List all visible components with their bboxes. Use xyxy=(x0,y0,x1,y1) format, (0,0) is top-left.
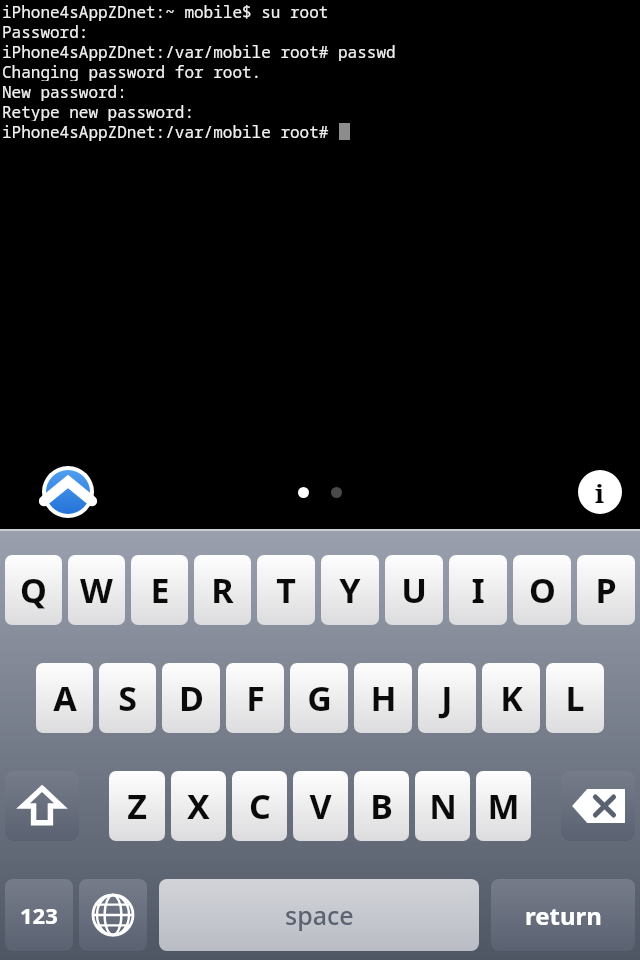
button[interactable]: Shift xyxy=(5,771,79,841)
button[interactable]: E xyxy=(131,555,188,625)
button[interactable]: W xyxy=(68,555,125,625)
staticText: Changing password for root. xyxy=(2,61,262,81)
button[interactable]: Q xyxy=(5,555,62,625)
staticText: Retype new password: xyxy=(2,101,195,121)
button[interactable]: Backspace xyxy=(561,771,635,841)
staticText: E xyxy=(150,567,170,613)
staticText: F xyxy=(246,675,265,721)
staticText: V xyxy=(309,783,332,829)
staticText: H xyxy=(370,675,397,721)
button[interactable]: N xyxy=(415,771,470,841)
button[interactable]: 123 xyxy=(5,879,73,951)
button[interactable]: X xyxy=(171,771,226,841)
staticText: 123 xyxy=(20,900,58,930)
staticText: C xyxy=(249,783,271,829)
button[interactable]: I xyxy=(449,555,507,625)
staticText: I xyxy=(471,567,485,613)
staticText: L xyxy=(565,675,585,721)
staticText: J xyxy=(441,675,453,721)
button[interactable]: Y xyxy=(321,555,379,625)
staticText: New password: xyxy=(2,81,127,101)
staticText: O xyxy=(529,567,556,613)
staticText: T xyxy=(276,567,296,613)
staticText: X xyxy=(187,783,210,829)
button[interactable]: Info xyxy=(578,470,622,514)
staticText: N xyxy=(429,783,457,829)
button[interactable]: D xyxy=(162,663,220,733)
button[interactable]: space xyxy=(159,879,479,951)
button[interactable]: V xyxy=(293,771,348,841)
button[interactable]: P xyxy=(577,555,635,625)
staticText: return xyxy=(525,899,602,932)
button[interactable]: return xyxy=(491,879,635,951)
button[interactable]: Scroll up xyxy=(42,466,94,518)
staticText: M xyxy=(487,783,520,829)
button[interactable]: C xyxy=(232,771,287,841)
button[interactable]: Change keyboard xyxy=(79,879,147,951)
staticText: Password: xyxy=(2,21,89,41)
staticText: D xyxy=(179,675,204,721)
staticText: A xyxy=(53,675,77,721)
button[interactable]: U xyxy=(385,555,443,625)
button[interactable]: J xyxy=(418,663,476,733)
staticText: U xyxy=(401,567,427,613)
button[interactable]: M xyxy=(476,771,531,841)
staticText: P xyxy=(595,567,617,613)
staticText: S xyxy=(118,675,137,721)
staticText: iPhone4sAppZDnet:/var/mobile root# passw… xyxy=(2,41,396,61)
staticText: R xyxy=(211,567,234,613)
staticText: B xyxy=(370,783,393,829)
button[interactable]: R xyxy=(194,555,251,625)
staticText: K xyxy=(500,675,523,721)
staticText: W xyxy=(80,567,113,613)
button[interactable]: A xyxy=(36,663,93,733)
staticText: Z xyxy=(127,783,147,829)
staticText: iPhone4sAppZDnet:~ mobile$ su root xyxy=(2,1,329,21)
staticText: Y xyxy=(339,567,361,613)
staticText: G xyxy=(307,675,332,721)
button[interactable]: H xyxy=(354,663,412,733)
button[interactable]: T xyxy=(257,555,315,625)
staticText: i xyxy=(595,475,605,510)
staticText: iPhone4sAppZDnet:/var/mobile root# xyxy=(2,121,339,141)
button[interactable]: Z xyxy=(109,771,165,841)
button[interactable]: K xyxy=(482,663,540,733)
button[interactable]: F xyxy=(226,663,284,733)
staticText: space xyxy=(285,898,354,932)
button[interactable]: B xyxy=(354,771,409,841)
button[interactable]: G xyxy=(290,663,348,733)
button[interactable]: S xyxy=(99,663,156,733)
staticText: Q xyxy=(20,567,47,613)
button[interactable]: L xyxy=(546,663,604,733)
button[interactable]: O xyxy=(513,555,571,625)
